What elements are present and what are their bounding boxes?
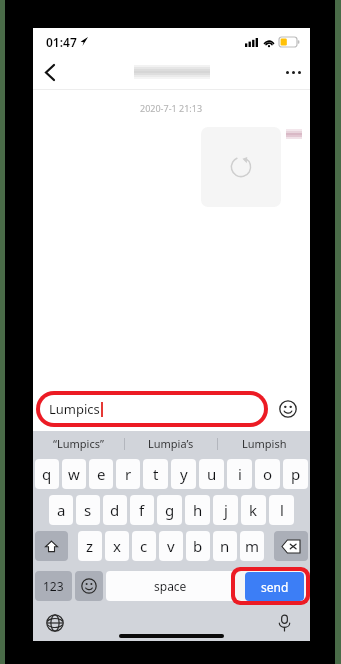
staticText: send (261, 579, 289, 595)
button[interactable]: q (35, 459, 59, 489)
button[interactable]: u (199, 459, 224, 489)
button[interactable]: n (213, 531, 237, 561)
button[interactable]: x (105, 531, 129, 561)
staticText: z (86, 536, 94, 556)
button[interactable]: l (269, 495, 294, 525)
button[interactable]: o (255, 459, 280, 489)
staticText: j (224, 500, 228, 520)
button[interactable]: Change keyboard (41, 609, 69, 637)
button[interactable]: p (283, 459, 308, 489)
staticText: o (263, 464, 273, 484)
button[interactable]: Lumpics (40, 395, 264, 423)
staticText: d (110, 500, 120, 520)
button[interactable] (201, 127, 281, 207)
staticText: t (153, 464, 159, 484)
staticText: e (97, 464, 106, 484)
button[interactable]: Dictation (270, 609, 298, 637)
staticText: y (180, 464, 188, 484)
staticText: space (154, 578, 187, 594)
staticText: 2020-7-1 21:13 (140, 102, 203, 114)
button[interactable]: 123 (35, 571, 72, 601)
button[interactable]: k (241, 495, 266, 525)
button[interactable]: h (185, 495, 210, 525)
button[interactable]: Back (33, 55, 67, 89)
button[interactable]: Emoji keyboard (75, 571, 103, 601)
button[interactable]: b (186, 531, 210, 561)
button[interactable]: r (116, 459, 140, 489)
staticText: c (140, 536, 148, 556)
button[interactable]: g (157, 495, 182, 525)
staticText: p (291, 464, 301, 484)
button[interactable]: e (89, 459, 113, 489)
button[interactable]: d (103, 495, 127, 525)
staticText: s (84, 500, 92, 520)
button[interactable]: i (227, 459, 252, 489)
button[interactable]: Emoji (277, 398, 299, 420)
button[interactable]: send (245, 572, 304, 601)
staticText: x (113, 536, 121, 556)
button[interactable]: v (159, 531, 183, 561)
staticText: u (207, 464, 217, 484)
button[interactable]: j (213, 495, 238, 525)
staticText: i (238, 464, 242, 484)
staticText: a (57, 500, 66, 520)
staticText: q (42, 464, 52, 484)
button[interactable]: Lumpia’s (125, 431, 217, 456)
staticText: n (220, 536, 230, 556)
staticText: Lumpics (49, 400, 100, 418)
button[interactable]: Lumpish (218, 431, 310, 456)
staticText: 123 (43, 578, 64, 594)
button[interactable]: m (240, 531, 264, 561)
button[interactable]: c (132, 531, 156, 561)
button[interactable]: Backspace (274, 531, 308, 561)
staticText: m (245, 536, 260, 556)
button[interactable]: a (49, 495, 73, 525)
staticText: g (165, 500, 175, 520)
button[interactable]: “Lumpics” (33, 431, 124, 456)
button[interactable]: Shift (35, 531, 68, 561)
staticText: w (68, 464, 80, 484)
staticText: k (249, 500, 258, 520)
staticText: v (167, 536, 175, 556)
button[interactable]: y (171, 459, 196, 489)
button[interactable]: z (78, 531, 102, 561)
staticText: b (193, 536, 203, 556)
staticText: “Lumpics” (53, 436, 104, 451)
staticText: l (280, 500, 284, 520)
staticText: 01:47 (46, 34, 77, 50)
staticText: h (193, 500, 203, 520)
button[interactable]: space (106, 571, 235, 601)
button[interactable]: s (76, 495, 100, 525)
button[interactable]: More options (276, 55, 310, 89)
staticText: r (125, 464, 132, 484)
staticText: f (139, 500, 145, 520)
button[interactable]: f (130, 495, 154, 525)
staticText: Lumpia’s (148, 436, 194, 451)
button[interactable]: w (62, 459, 86, 489)
staticText: Lumpish (242, 436, 287, 451)
button[interactable]: t (143, 459, 168, 489)
